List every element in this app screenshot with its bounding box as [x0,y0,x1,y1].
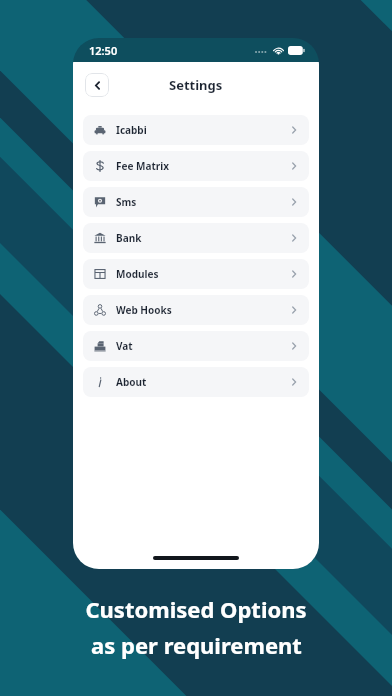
button[interactable]: Fee Matrix [83,151,309,181]
staticText: as per requirement [91,630,302,660]
button[interactable]: About [83,367,309,397]
button[interactable]: Icabbi [83,115,309,145]
staticText: Fee Matrix [116,159,170,173]
staticText: Icabbi [116,123,147,137]
button[interactable]: Vat [83,331,309,361]
button[interactable]: Bank [83,223,309,253]
staticText: Modules [116,267,159,281]
staticText: Customised Options [85,594,307,624]
staticText: About [116,375,147,389]
button[interactable]: Web Hooks [83,295,309,325]
staticText: Bank [116,231,142,245]
button[interactable]: Sms [83,187,309,217]
button[interactable]: Modules [83,259,309,289]
staticText: Settings [169,76,223,94]
staticText: 12:50 [89,43,118,58]
staticText: Web Hooks [116,303,172,317]
staticText: Sms [116,195,137,209]
staticText: Vat [116,339,133,353]
button[interactable]: Back [85,73,109,97]
